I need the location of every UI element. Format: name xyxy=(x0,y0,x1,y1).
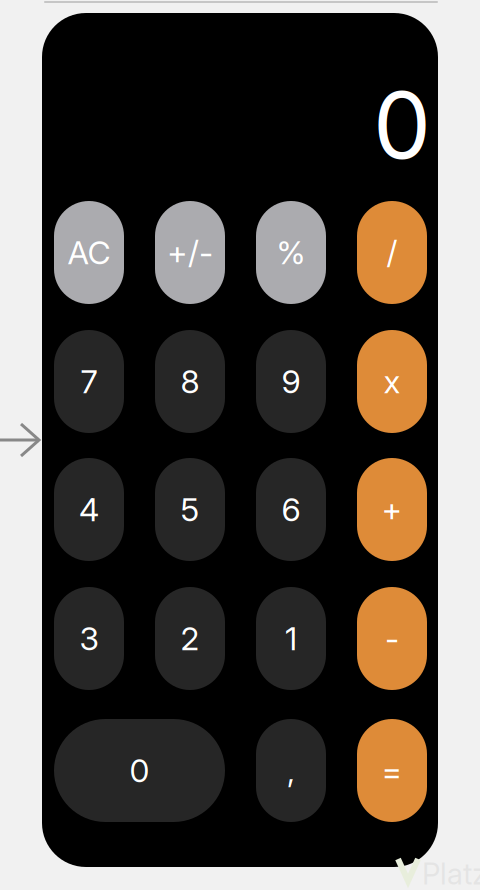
button[interactable]: 0 xyxy=(54,719,225,822)
staticText: 2 xyxy=(180,619,199,658)
staticText: 0 xyxy=(129,751,149,790)
button[interactable]: 2 xyxy=(155,587,225,690)
button[interactable]: 3 xyxy=(54,587,124,690)
button[interactable]: % xyxy=(256,201,326,304)
button[interactable]: , xyxy=(256,719,326,822)
staticText: 3 xyxy=(79,619,98,658)
staticText: Platzi xyxy=(422,856,480,890)
staticText: % xyxy=(276,233,305,272)
staticText: 0 xyxy=(373,69,431,181)
staticText: AC xyxy=(67,233,110,272)
button[interactable]: 8 xyxy=(155,330,225,433)
button[interactable]: + xyxy=(357,458,427,561)
button[interactable]: +/- xyxy=(155,201,225,304)
staticText: , xyxy=(287,751,295,790)
staticText: / xyxy=(386,233,397,272)
staticText: + xyxy=(381,490,402,529)
staticText: 8 xyxy=(180,362,199,401)
button[interactable]: 1 xyxy=(256,587,326,690)
button[interactable]: 4 xyxy=(54,458,124,561)
button[interactable]: AC xyxy=(54,201,124,304)
staticText: 1 xyxy=(285,619,297,658)
button[interactable]: = xyxy=(357,719,427,822)
staticText: +/- xyxy=(167,233,213,272)
staticText: = xyxy=(381,751,402,790)
button[interactable]: x xyxy=(357,330,427,433)
button[interactable]: 9 xyxy=(256,330,326,433)
staticText: - xyxy=(385,619,399,658)
button[interactable]: / xyxy=(357,201,427,304)
staticText: 5 xyxy=(180,490,199,529)
button[interactable]: 5 xyxy=(155,458,225,561)
button[interactable]: 6 xyxy=(256,458,326,561)
staticText: 4 xyxy=(79,490,99,529)
staticText: 6 xyxy=(281,490,300,529)
staticText: 7 xyxy=(80,362,97,401)
button[interactable]: - xyxy=(357,587,427,690)
staticText: 9 xyxy=(281,362,300,401)
staticText: x xyxy=(383,362,400,401)
button[interactable]: 7 xyxy=(54,330,124,433)
